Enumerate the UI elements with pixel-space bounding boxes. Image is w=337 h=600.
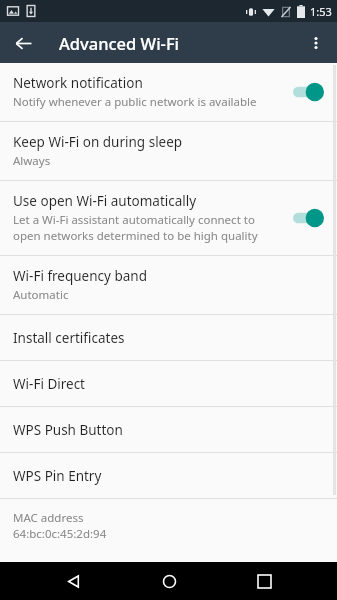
button[interactable]: Back xyxy=(6,26,40,60)
staticText: Install certificates xyxy=(13,329,125,347)
other: Toggle xyxy=(291,82,325,102)
other: Toggle xyxy=(291,208,325,228)
staticText: Always xyxy=(13,153,51,169)
staticText: Wi-Fi frequency band xyxy=(13,267,147,285)
staticText: 1:53 xyxy=(310,4,332,19)
button[interactable]: Network notification xyxy=(0,63,337,121)
button[interactable]: WPS Push Button xyxy=(0,407,337,452)
button[interactable]: Use open Wi-Fi automatically xyxy=(0,181,337,255)
staticText: Wi-Fi Direct xyxy=(13,375,85,393)
button[interactable]: Keep Wi-Fi on during sleep xyxy=(0,122,337,180)
button[interactable]: Recent apps xyxy=(242,562,286,600)
staticText: Let a Wi-Fi assistant automatically conn… xyxy=(13,212,255,228)
staticText: MAC address xyxy=(13,510,84,526)
staticText: Network notification xyxy=(13,74,143,92)
button[interactable]: MAC address xyxy=(0,499,337,550)
staticText: Advanced Wi-Fi xyxy=(59,32,180,54)
staticText: Use open Wi-Fi automatically xyxy=(13,192,197,210)
staticText: WPS Pin Entry xyxy=(13,467,102,485)
staticText: open networks determined to be high qual… xyxy=(13,228,258,244)
staticText: WPS Push Button xyxy=(13,421,123,439)
staticText: 64:bc:0c:45:2d:94 xyxy=(13,526,107,542)
button[interactable]: WPS Pin Entry xyxy=(0,453,337,498)
staticText: Automatic xyxy=(13,287,69,303)
button[interactable]: Home xyxy=(147,562,191,600)
button[interactable]: Wi-Fi Direct xyxy=(0,361,337,406)
button[interactable]: Back xyxy=(51,562,95,600)
staticText: Keep Wi-Fi on during sleep xyxy=(13,133,183,151)
staticText: Notify whenever a public network is avai… xyxy=(13,94,257,110)
button[interactable]: More options xyxy=(299,26,333,60)
button[interactable]: Install certificates xyxy=(0,315,337,360)
button[interactable]: Wi-Fi frequency band xyxy=(0,256,337,314)
